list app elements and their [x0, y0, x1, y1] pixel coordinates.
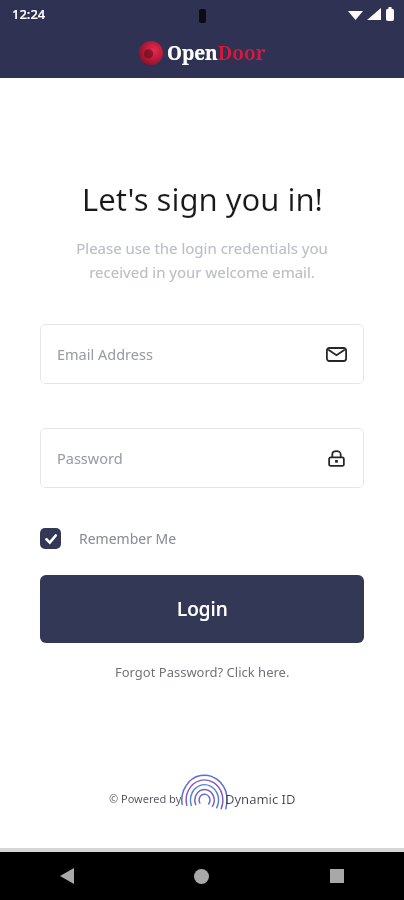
staticText: Please use the login credentials you rec…: [76, 238, 328, 282]
staticText: 12:24: [12, 5, 46, 23]
staticText: © Powered by: [109, 791, 182, 806]
button[interactable]: Forgot Password? Click here.: [105, 659, 300, 685]
button[interactable]: OpenDoor: [133, 38, 272, 68]
button[interactable]: Password field: [40, 428, 364, 488]
button[interactable]: Login: [40, 575, 364, 643]
staticText: OpenDoor: [167, 40, 266, 66]
button[interactable]: Recent apps: [269, 852, 404, 900]
staticText: Password: [57, 448, 326, 468]
staticText: Email Address: [57, 344, 326, 364]
staticText: Forgot Password? Click here.: [115, 663, 290, 681]
button[interactable]: Back: [0, 852, 134, 900]
button[interactable]: Home: [134, 852, 269, 900]
button[interactable]: Email address field: [40, 324, 364, 384]
staticText: Let's sign you in!: [82, 178, 323, 220]
staticText: Login: [177, 596, 228, 622]
button[interactable]: Remember Me: [40, 524, 364, 553]
staticText: Remember Me: [79, 529, 177, 548]
staticText: Dynamic ID: [225, 790, 296, 808]
